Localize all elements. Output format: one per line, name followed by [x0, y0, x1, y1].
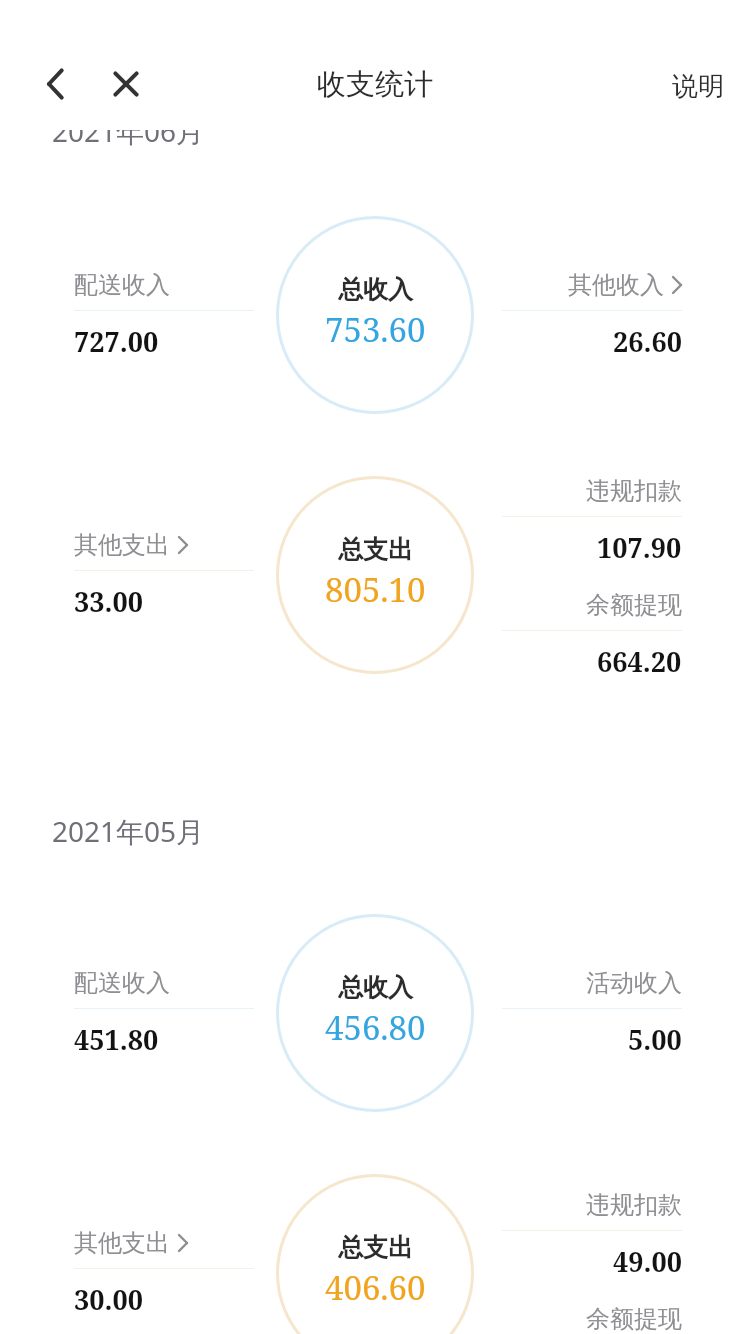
staticText: 违规扣款 [586, 476, 682, 506]
button[interactable]: 总支出 [276, 1174, 474, 1334]
staticText: 总收入 [338, 972, 413, 1003]
staticText: 余额提现 [586, 1304, 682, 1334]
staticText: 总支出 [338, 1232, 413, 1263]
button[interactable]: 总收入 [276, 914, 474, 1112]
staticText: 总收入 [338, 274, 413, 305]
button[interactable]: 违规扣款 [502, 1190, 682, 1280]
staticText: 5.00 [628, 1021, 682, 1058]
staticText: 451.80 [74, 1021, 159, 1058]
button[interactable]: 活动收入 [502, 968, 682, 1058]
button[interactable]: 总支出 [276, 476, 474, 674]
button[interactable]: 配送收入 [74, 968, 254, 1058]
staticText: 30.00 [74, 1281, 143, 1318]
staticText: 收支统计 [317, 66, 433, 103]
button[interactable]: 说明 [646, 58, 750, 115]
staticText: 406.60 [325, 1265, 426, 1310]
staticText: 总支出 [338, 534, 413, 565]
staticText: 107.90 [597, 529, 682, 566]
staticText: 753.60 [325, 307, 426, 352]
staticText: 其他支出 [74, 1228, 170, 1258]
staticText: 配送收入 [74, 270, 170, 300]
button[interactable]: 违规扣款 [502, 476, 682, 566]
button[interactable]: 其他支出 [74, 530, 254, 620]
staticText: 33.00 [74, 583, 143, 620]
staticText: 26.60 [613, 323, 682, 360]
button[interactable]: 其他收入 [502, 270, 682, 360]
button[interactable]: 余额提现 [502, 1304, 682, 1334]
staticText: 其他收入 [568, 270, 664, 300]
staticText: 余额提现 [586, 590, 682, 620]
staticText: 805.10 [325, 567, 426, 612]
button[interactable]: 总收入 [276, 216, 474, 414]
staticText: 其他支出 [74, 530, 170, 560]
staticText: 49.00 [613, 1243, 682, 1280]
staticText: 456.80 [325, 1005, 426, 1050]
staticText: 活动收入 [586, 968, 682, 998]
button[interactable]: Back [28, 56, 84, 112]
staticText: 说明 [672, 70, 724, 103]
staticText: 违规扣款 [586, 1190, 682, 1220]
staticText: 727.00 [74, 323, 159, 360]
staticText: 2021年05月 [52, 812, 205, 850]
button[interactable]: 其他支出 [74, 1228, 254, 1318]
staticText: 配送收入 [74, 968, 170, 998]
staticText: 664.20 [597, 643, 682, 674]
staticText: 2021年06月 [52, 112, 205, 150]
button[interactable]: 配送收入 [74, 270, 254, 360]
button[interactable]: 余额提现 [502, 590, 682, 674]
button[interactable]: Close [98, 56, 154, 112]
